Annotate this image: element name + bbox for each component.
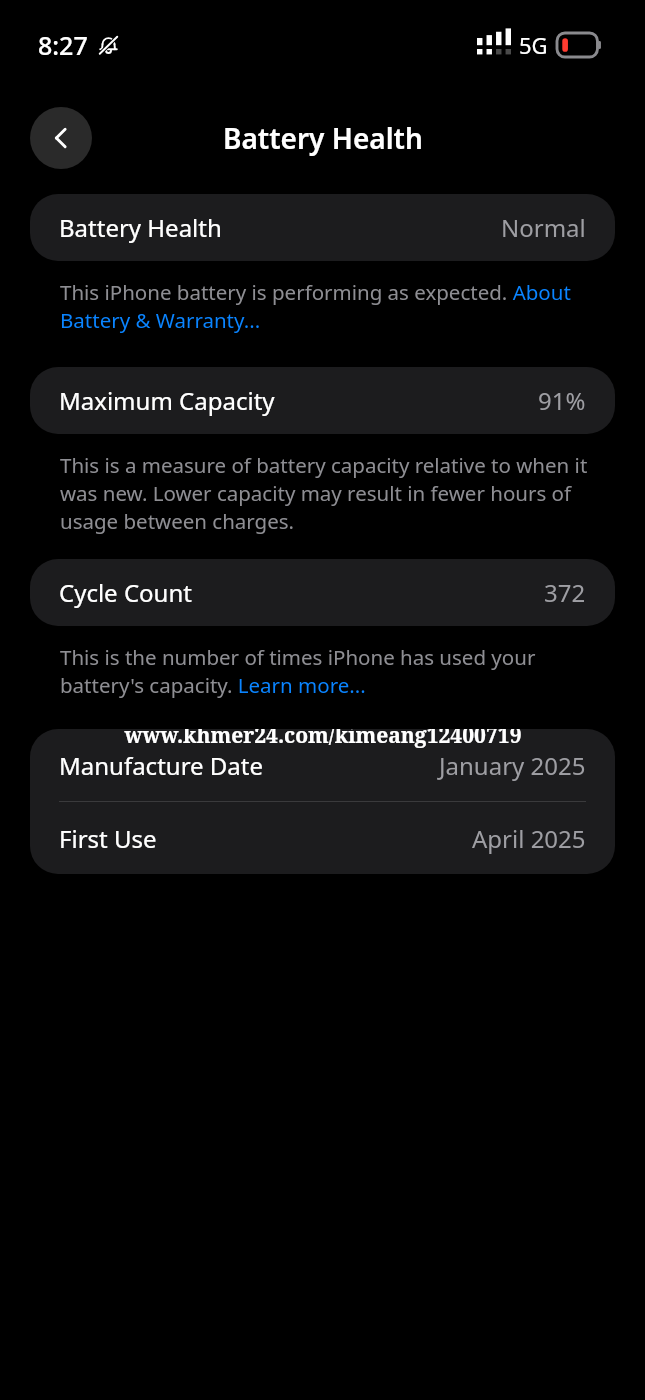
button[interactable]: Back [30,107,92,169]
staticText: Cycle Count [59,576,192,609]
staticText: Normal [501,211,586,244]
staticText: January 2025 [439,749,586,782]
staticText: 372 [544,576,586,609]
button[interactable]: Cycle Count [30,559,615,626]
staticText: Manufacture Date [59,749,264,782]
staticText: 5G [519,30,548,60]
staticText: This is the number of times iPhone has u… [60,643,593,699]
button[interactable]: Manufacture Date [30,729,615,801]
staticText: 91% [538,384,586,417]
staticText: This is a measure of battery capacity re… [60,451,593,535]
staticText: Battery Health [59,211,222,244]
button[interactable]: Battery Health [30,194,615,261]
button[interactable]: Maximum Capacity [30,367,615,434]
staticText: 8:27 [38,28,88,62]
staticText: April 2025 [472,822,586,855]
staticText: Maximum Capacity [59,384,275,417]
staticText: First Use [59,822,157,855]
staticText: This iPhone battery is performing as exp… [60,278,593,334]
staticText: www.khmer24.com/kimeang12400719 [124,729,522,750]
button[interactable]: First Use [30,802,615,874]
staticText: Battery Health [223,119,423,157]
